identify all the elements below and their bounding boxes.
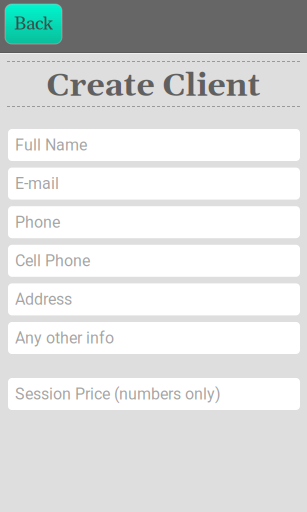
staticText: Create Client (46, 66, 260, 107)
button[interactable]: Session Price (numbers only) (8, 378, 300, 410)
button[interactable]: Any other info (8, 322, 300, 354)
staticText: E-mail (15, 174, 59, 193)
button[interactable]: E-mail (8, 168, 300, 200)
staticText: Session Price (numbers only) (15, 385, 221, 403)
button[interactable]: Full Name (8, 129, 300, 161)
staticText: Address (15, 290, 72, 309)
staticText: Full Name (15, 136, 87, 154)
staticText: Back (14, 12, 53, 36)
staticText: Cell Phone (15, 251, 90, 270)
button[interactable]: Back (5, 4, 62, 44)
button[interactable]: Address (8, 283, 300, 315)
staticText: Phone (15, 213, 60, 232)
button[interactable]: Cell Phone (8, 245, 300, 277)
staticText: Any other info (15, 329, 114, 347)
button[interactable]: Phone (8, 206, 300, 238)
